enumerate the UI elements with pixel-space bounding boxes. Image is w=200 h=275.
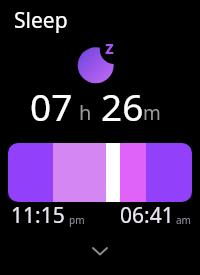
staticText: h [79,99,92,126]
staticText: 26 [101,81,144,131]
staticText: m [143,100,161,126]
staticText: am [176,213,191,227]
button[interactable] [86,242,114,260]
staticText: 07 [30,81,73,131]
staticText: pm [69,213,85,227]
button[interactable] [8,143,192,202]
staticText: Sleep [14,6,68,35]
staticText: 06:41 [120,201,174,230]
staticText: 11:15 [11,201,65,230]
staticText: z [105,35,114,60]
